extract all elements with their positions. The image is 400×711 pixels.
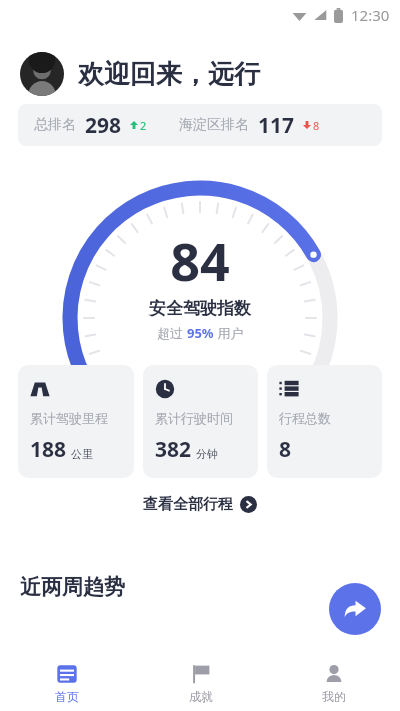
button[interactable]: 我的 (267, 655, 400, 711)
button[interactable]: 成就 (134, 655, 267, 711)
staticText: 8 (313, 118, 320, 133)
staticText: 欢迎回来，远行 (78, 58, 260, 91)
staticText: 超过 (157, 324, 187, 342)
staticText: 2 (140, 118, 147, 133)
staticText: 8 (279, 435, 292, 464)
staticText: 95% (187, 324, 214, 342)
staticText: 298 (85, 111, 122, 140)
staticText: 我的 (322, 689, 346, 704)
staticText: 累计驾驶里程 (30, 410, 108, 426)
staticText: 12:30 (351, 5, 390, 25)
staticText: 首页 (55, 689, 79, 704)
staticText: 近两周趋势 (20, 574, 125, 600)
button[interactable]: 累计行驶时间 (143, 365, 258, 478)
button[interactable]: Profile avatar (20, 52, 64, 96)
staticText: 公里 (71, 447, 93, 461)
staticText: 海淀区排名 (179, 116, 249, 134)
staticText: 累计行驶时间 (155, 410, 233, 426)
staticText: 分钟 (196, 447, 218, 461)
staticText: 382 (155, 435, 192, 464)
button[interactable]: 首页 (0, 655, 134, 711)
staticText: 安全驾驶指数 (149, 298, 251, 319)
staticText: 188 (30, 435, 67, 464)
button[interactable]: 查看全部行程 (133, 490, 267, 519)
button[interactable]: 累计驾驶里程 (18, 365, 134, 478)
staticText: 用户 (214, 324, 244, 342)
staticText: 117 (258, 111, 295, 140)
staticText: 成就 (189, 689, 213, 704)
staticText: 84 (170, 225, 230, 296)
button[interactable]: Share (329, 583, 381, 635)
staticText: 查看全部行程 (143, 495, 233, 514)
button[interactable]: 总排名 (18, 104, 382, 146)
button[interactable]: 行程总数 (267, 365, 382, 478)
staticText: 行程总数 (279, 410, 331, 426)
staticText: 总排名 (34, 116, 76, 134)
